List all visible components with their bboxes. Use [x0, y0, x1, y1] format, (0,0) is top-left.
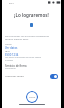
staticText: Avisos por correo — [5, 75, 24, 78]
button[interactable]: Continuar — [26, 91, 38, 103]
staticText: Servicio de firma — [5, 64, 61, 68]
staticText: Para continuar con el proceso necesitamo… — [5, 35, 58, 41]
staticText: ES00 1234 — [5, 53, 19, 57]
staticText: Titular — [5, 43, 12, 46]
staticText: IBAN — [5, 50, 11, 53]
staticText: Los datos se guardan de forma segura y c… — [5, 56, 61, 62]
staticText: Ver datos — [5, 46, 18, 50]
button[interactable]: Titular — [2, 43, 61, 50]
button[interactable]: IBAN — [2, 50, 61, 57]
staticText: ¡Lo lograremos! — [2, 12, 61, 18]
button[interactable]: Avisos por correo — [2, 72, 61, 81]
staticText: 9:41 — [9, 1, 14, 4]
staticText: Contratado — [5, 67, 61, 70]
staticText: Firmar — [29, 96, 36, 99]
